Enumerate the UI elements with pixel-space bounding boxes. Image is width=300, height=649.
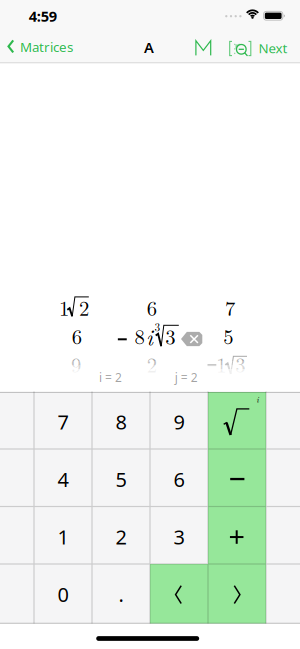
- button[interactable]: Matrices: [8, 34, 80, 58]
- staticText: 5: [115, 466, 126, 492]
- button[interactable]: [195, 40, 212, 56]
- button[interactable]: [181, 332, 202, 346]
- staticText: 6: [173, 466, 184, 492]
- staticText: 8: [134, 321, 144, 350]
- staticText: 9: [173, 408, 184, 435]
- staticText: i = 2: [99, 369, 122, 385]
- button[interactable]: 0: [34, 564, 91, 621]
- staticText: 7: [57, 408, 68, 435]
- staticText: 0: [57, 581, 68, 607]
- button[interactable]: 4: [34, 449, 91, 506]
- staticText: .: [118, 581, 123, 607]
- button[interactable]: [150, 564, 207, 621]
- button[interactable]: [208, 392, 265, 448]
- staticText: j = 2: [175, 369, 198, 385]
- button[interactable]: 8: [92, 392, 149, 448]
- button[interactable]: .: [92, 564, 149, 621]
- button[interactable]: 6: [150, 449, 207, 506]
- staticText: A: [144, 38, 154, 57]
- staticText: 6: [147, 292, 157, 322]
- staticText: 1: [59, 292, 69, 322]
- button[interactable]: 2: [92, 507, 149, 563]
- staticText: 3: [154, 319, 160, 335]
- staticText: Next: [258, 39, 287, 57]
- staticText: i: [146, 320, 153, 352]
- button[interactable]: [208, 564, 265, 621]
- staticText: 2: [79, 292, 89, 322]
- staticText: Matrices: [20, 38, 73, 56]
- button[interactable]: 9: [150, 392, 207, 448]
- staticText: 3: [165, 321, 175, 350]
- staticText: 5: [223, 321, 233, 350]
- button[interactable]: 5: [92, 449, 149, 506]
- button[interactable]: [229, 41, 251, 56]
- staticText: 2: [115, 523, 126, 550]
- staticText: 9: [71, 349, 81, 379]
- staticText: 3: [235, 349, 245, 379]
- button[interactable]: Next: [0, 0, 300, 649]
- staticText: 7: [225, 292, 235, 322]
- staticText: 2: [147, 349, 157, 379]
- staticText: 1: [216, 349, 226, 379]
- staticText: 1: [57, 523, 68, 550]
- staticText: 4:59: [29, 6, 57, 26]
- button[interactable]: 3: [150, 507, 207, 563]
- button[interactable]: [208, 507, 265, 563]
- button[interactable]: 1: [34, 507, 91, 563]
- staticText: 3: [173, 523, 184, 550]
- button[interactable]: [208, 449, 265, 506]
- staticText: 4: [57, 466, 68, 492]
- button[interactable]: 7: [34, 392, 91, 448]
- staticText: i: [256, 394, 259, 405]
- staticText: 6: [72, 321, 82, 350]
- staticText: 8: [115, 408, 126, 435]
